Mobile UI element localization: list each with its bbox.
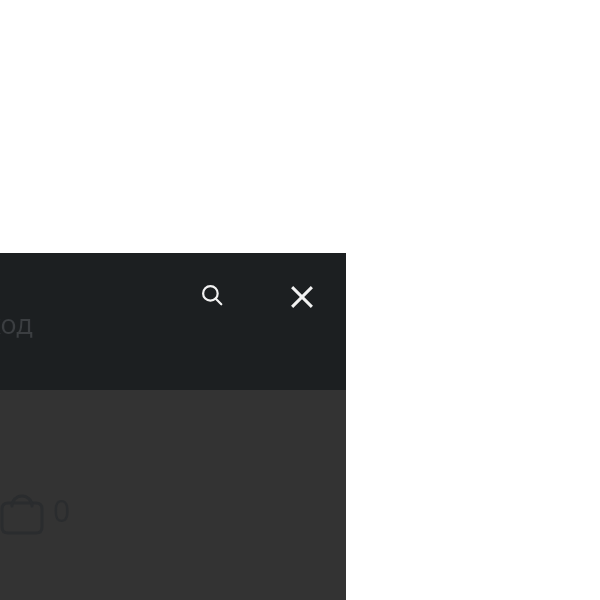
staticText: Вход xyxy=(0,305,33,342)
staticText: 0 xyxy=(53,490,71,531)
button[interactable]: Вход xyxy=(0,305,80,345)
button[interactable]: Search xyxy=(189,272,237,320)
button[interactable]: Close xyxy=(278,273,326,321)
